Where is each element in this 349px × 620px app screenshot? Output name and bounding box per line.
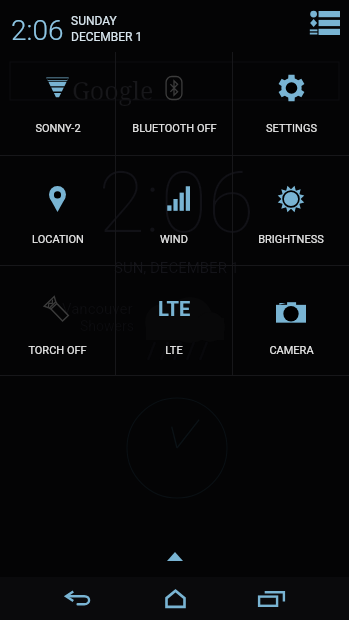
- button[interactable]: WIND: [116, 156, 232, 265]
- staticText: SONNY-2: [35, 122, 81, 135]
- staticText: Google: [72, 73, 154, 107]
- staticText: CAMERA: [269, 344, 314, 357]
- staticText: BLUETOOTH OFF: [132, 122, 217, 135]
- button[interactable]: CAMERA: [233, 266, 349, 375]
- staticText: SUNDAY: [71, 14, 117, 28]
- button[interactable]: Collapse quick settings: [0, 548, 349, 577]
- button[interactable]: BLUETOOTH OFF: [116, 52, 232, 155]
- staticText: WIND: [160, 233, 188, 246]
- staticText: SUN, DECEMBER 1: [114, 259, 240, 277]
- button[interactable]: Quick settings: [303, 0, 347, 52]
- staticText: 2:06: [98, 152, 255, 253]
- staticText: BRIGHTNESS: [258, 233, 324, 246]
- staticText: SETTINGS: [266, 122, 317, 135]
- staticText: Showers: [80, 318, 134, 334]
- staticText: LTE: [158, 297, 191, 320]
- staticText: LOCATION: [32, 233, 84, 246]
- staticText: Vancouver: [62, 300, 133, 318]
- button[interactable]: Home: [127, 577, 223, 620]
- staticText: 2:06: [11, 14, 64, 47]
- button[interactable]: Recents: [223, 577, 319, 620]
- staticText: TORCH OFF: [28, 344, 87, 357]
- button[interactable]: Back: [30, 577, 127, 620]
- staticText: DECEMBER 1: [71, 30, 143, 44]
- button[interactable]: SETTINGS: [233, 52, 349, 155]
- staticText: LTE: [165, 344, 183, 357]
- button[interactable]: TORCH OFF: [0, 266, 115, 375]
- button[interactable]: LTE: [116, 266, 232, 375]
- button[interactable]: BRIGHTNESS: [233, 156, 349, 265]
- button[interactable]: LOCATION: [0, 156, 115, 265]
- button[interactable]: SONNY-2: [0, 52, 115, 155]
